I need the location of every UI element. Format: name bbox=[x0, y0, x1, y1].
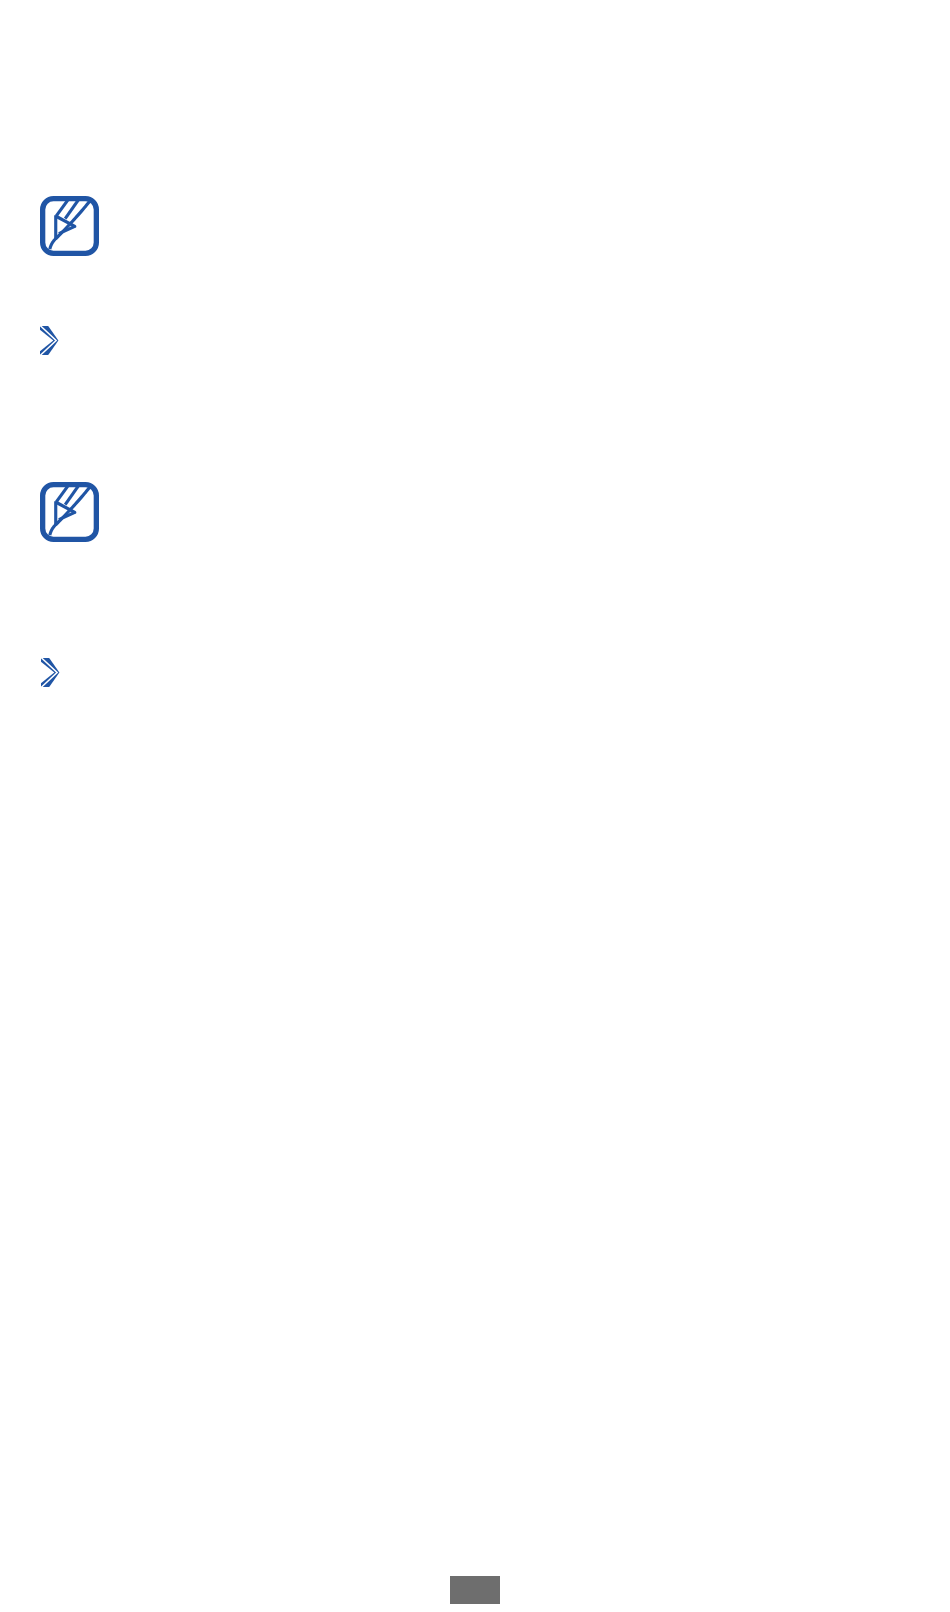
button[interactable]: Go to step bbox=[40, 326, 59, 355]
button[interactable]: Note bbox=[40, 196, 99, 256]
button[interactable]: Note bbox=[40, 482, 99, 542]
button[interactable]: Go to step bbox=[41, 658, 60, 687]
